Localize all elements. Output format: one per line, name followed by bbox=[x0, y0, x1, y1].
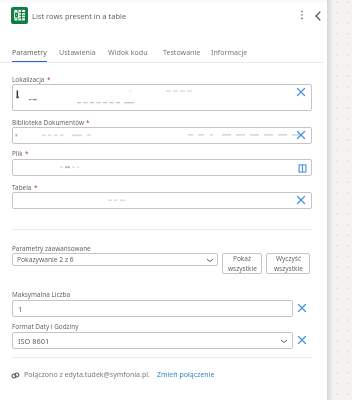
staticText: Format Daty i Godziny bbox=[12, 322, 79, 331]
staticText: Informacje bbox=[211, 47, 248, 57]
staticText: wszystkie bbox=[274, 264, 303, 273]
staticText: Biblioteka Dokumentów bbox=[12, 118, 84, 127]
staticText: * bbox=[25, 149, 29, 158]
staticText: * bbox=[34, 183, 38, 192]
button[interactable]: Pokazywanie 2 z 6 bbox=[12, 253, 218, 266]
button[interactable]: Informacje bbox=[211, 47, 248, 57]
button[interactable]: Pokaż bbox=[222, 253, 262, 274]
button[interactable]: Wyczyść bbox=[294, 85, 308, 99]
button[interactable]: Wyczyść bbox=[295, 301, 309, 315]
button[interactable]: 1 bbox=[12, 300, 293, 317]
button[interactable]: Ustawienia bbox=[59, 47, 96, 57]
staticText: Lokalizacja bbox=[12, 75, 45, 84]
staticText: Ustawienia bbox=[59, 47, 96, 57]
button[interactable]: Wyczyść bbox=[12, 84, 312, 111]
button[interactable]: Widok kodu bbox=[108, 47, 148, 57]
staticText: 1 bbox=[18, 304, 23, 314]
button[interactable]: More options bbox=[293, 6, 311, 24]
button[interactable]: Wyczyść bbox=[295, 333, 309, 347]
staticText: Testowanie bbox=[163, 47, 201, 57]
button[interactable]: Zmień połączenie bbox=[157, 370, 215, 380]
staticText: Zmień połączenie bbox=[157, 370, 215, 380]
staticText: ISO 8601 bbox=[18, 336, 50, 346]
staticText: wszystkie bbox=[228, 264, 257, 273]
staticText: Plik bbox=[12, 149, 23, 158]
button[interactable]: Wyczyść bbox=[294, 128, 308, 142]
staticText: Wyczyść bbox=[276, 254, 302, 263]
button[interactable]: Wybierz plik bbox=[12, 159, 312, 176]
staticText: Pokaż bbox=[233, 254, 252, 263]
staticText: * bbox=[47, 75, 51, 84]
button[interactable]: Wyczyść bbox=[266, 253, 310, 274]
staticText: Pokazywanie 2 z 6 bbox=[17, 255, 74, 264]
button[interactable]: Wybierz plik bbox=[295, 161, 309, 175]
button[interactable]: Parametry bbox=[12, 47, 47, 57]
staticText: * bbox=[86, 118, 90, 127]
staticText: List rows present in a table bbox=[32, 11, 127, 21]
staticText: Widok kodu bbox=[108, 47, 148, 57]
staticText: Parametry bbox=[12, 47, 47, 57]
button[interactable]: Testowanie bbox=[163, 47, 201, 57]
staticText: Parametry zaawansowane bbox=[12, 244, 91, 253]
staticText: Maksymalna Liczba bbox=[12, 290, 71, 299]
button[interactable]: Wyczyść bbox=[294, 193, 308, 207]
button[interactable]: ISO 8601 bbox=[12, 332, 293, 349]
button[interactable]: Collapse bbox=[309, 7, 327, 25]
staticText: Tabela bbox=[12, 183, 32, 192]
button[interactable]: Wyczyść bbox=[12, 127, 312, 144]
button[interactable]: Wyczyść bbox=[12, 192, 312, 209]
staticText: Połączono z edyta.tudek@symfonia.pl. bbox=[24, 370, 150, 380]
